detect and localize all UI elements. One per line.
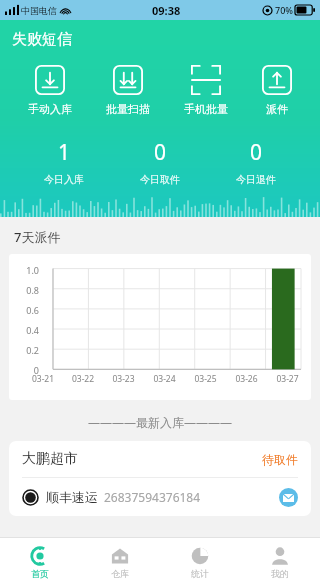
staticText: 手机批量 <box>184 102 228 116</box>
staticText: 26837594376184 <box>104 489 201 505</box>
staticText: 03-27 <box>267 373 308 385</box>
staticText: 失败短信 <box>12 30 72 49</box>
staticText: 0.2 <box>13 344 39 356</box>
staticText: 0.8 <box>13 284 39 296</box>
staticText: 今日退件 <box>236 173 276 186</box>
staticText: 大鹏超市 <box>22 450 78 468</box>
staticText: 70% <box>275 4 293 16</box>
staticText: 1.0 <box>13 264 39 276</box>
button[interactable]: 首页 <box>0 538 80 587</box>
staticText: 1 <box>58 138 71 167</box>
button[interactable]: 1.0 <box>9 254 311 400</box>
button[interactable]: 1 <box>32 136 96 188</box>
staticText: 03-24 <box>144 373 185 385</box>
staticText: 顺丰速运 <box>46 489 98 505</box>
staticText: 0 <box>13 364 39 376</box>
staticText: 03-26 <box>226 373 267 385</box>
staticText: 09:38 <box>152 3 181 18</box>
button[interactable]: 批量扫描 <box>100 63 156 118</box>
staticText: 仓库 <box>111 568 129 579</box>
staticText: 0.6 <box>13 304 39 316</box>
button[interactable]: 仓库 <box>80 538 160 587</box>
staticText: 03-25 <box>185 373 226 385</box>
staticText: 统计 <box>191 568 209 579</box>
staticText: 7天派件 <box>14 228 61 246</box>
staticText: 批量扫描 <box>106 102 150 116</box>
staticText: 今日入库 <box>44 173 84 186</box>
staticText: 手动入库 <box>28 102 72 116</box>
staticText: 0.4 <box>13 324 39 336</box>
staticText: 派件 <box>266 102 288 116</box>
button[interactable]: 发送短信 <box>279 488 298 507</box>
staticText: 首页 <box>31 568 49 579</box>
button[interactable]: 0 <box>128 136 192 188</box>
staticText: 0 <box>250 138 263 167</box>
staticText: 0 <box>154 138 167 167</box>
staticText: ————最新入库———— <box>0 414 320 430</box>
button[interactable]: 手动入库 <box>22 63 78 118</box>
button[interactable]: 0 <box>224 136 288 188</box>
staticText: 03-22 <box>63 373 103 385</box>
button[interactable]: 统计 <box>160 538 240 587</box>
staticText: 03-23 <box>103 373 144 385</box>
staticText: 中国电信 <box>21 5 57 16</box>
staticText: 03-21 <box>23 373 63 385</box>
button[interactable]: 大鹏超市 <box>9 441 311 516</box>
staticText: 我的 <box>271 568 289 579</box>
staticText: 待取件 <box>262 452 298 467</box>
staticText: 今日取件 <box>140 173 180 186</box>
button[interactable]: 我的 <box>240 538 320 587</box>
button[interactable]: 派件 <box>256 63 298 118</box>
button[interactable]: 手机批量 <box>178 63 234 118</box>
